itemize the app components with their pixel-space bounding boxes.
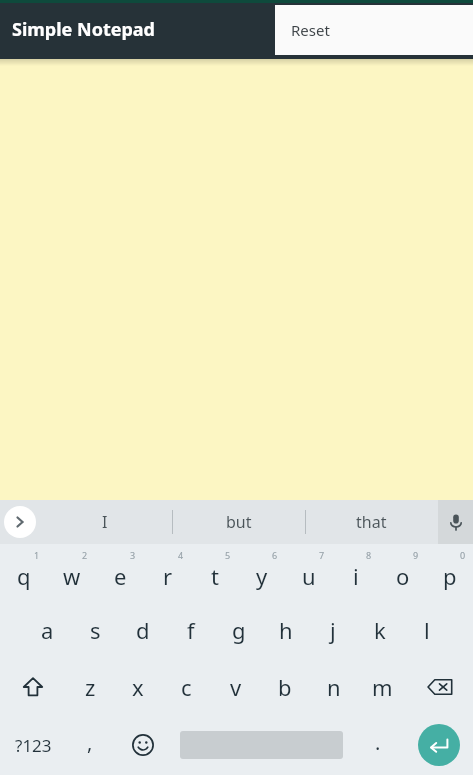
staticText: 4 bbox=[178, 549, 184, 561]
staticText: Simple Notepad bbox=[12, 17, 155, 42]
button[interactable]: t bbox=[191, 544, 238, 601]
staticText: s bbox=[90, 615, 101, 645]
staticText: j bbox=[330, 615, 336, 645]
button[interactable]: z bbox=[66, 658, 114, 715]
staticText: that bbox=[356, 511, 387, 533]
staticText: c bbox=[181, 672, 192, 702]
button[interactable]: Voice input bbox=[438, 500, 473, 544]
button[interactable]: Backspace bbox=[407, 658, 473, 715]
staticText: q bbox=[17, 561, 31, 591]
button[interactable]: c bbox=[162, 658, 211, 715]
button[interactable]: I bbox=[38, 500, 172, 544]
button[interactable]: x bbox=[114, 658, 162, 715]
staticText: x bbox=[132, 672, 144, 702]
staticText: o bbox=[396, 561, 410, 591]
button[interactable]: j bbox=[309, 601, 356, 658]
staticText: 2 bbox=[82, 549, 88, 561]
staticText: i bbox=[353, 561, 359, 591]
button[interactable]: d bbox=[119, 601, 167, 658]
button[interactable]: b bbox=[260, 658, 309, 715]
button[interactable]: v bbox=[211, 658, 260, 715]
button[interactable]: s bbox=[71, 601, 119, 658]
staticText: 3 bbox=[130, 549, 136, 561]
staticText: k bbox=[374, 615, 386, 645]
staticText: w bbox=[63, 561, 81, 591]
button[interactable]: ?123 bbox=[0, 715, 66, 775]
button[interactable]: Expand suggestions bbox=[4, 506, 36, 538]
staticText: f bbox=[187, 615, 195, 645]
staticText: l bbox=[424, 615, 430, 645]
button[interactable]: g bbox=[215, 601, 262, 658]
staticText: d bbox=[136, 615, 150, 645]
button[interactable]: k bbox=[356, 601, 403, 658]
staticText: e bbox=[114, 561, 127, 591]
button[interactable]: q bbox=[0, 544, 48, 601]
button[interactable]: w bbox=[48, 544, 96, 601]
button[interactable]: n bbox=[309, 658, 358, 715]
button[interactable]: Enter bbox=[418, 724, 460, 766]
staticText: h bbox=[279, 615, 293, 645]
staticText: 0 bbox=[460, 549, 466, 561]
staticText: n bbox=[327, 672, 341, 702]
button[interactable]: a bbox=[23, 601, 71, 658]
button[interactable]: y bbox=[238, 544, 285, 601]
staticText: t bbox=[211, 561, 219, 591]
button[interactable]: that bbox=[305, 500, 438, 544]
staticText: but bbox=[226, 511, 252, 533]
staticText: 6 bbox=[272, 549, 278, 561]
staticText: 5 bbox=[225, 549, 231, 561]
staticText: b bbox=[278, 672, 292, 702]
staticText: a bbox=[41, 615, 54, 645]
staticText: ?123 bbox=[15, 734, 52, 757]
button[interactable]: f bbox=[167, 601, 215, 658]
button[interactable]: . bbox=[351, 715, 405, 775]
staticText: Reset bbox=[291, 20, 330, 40]
button[interactable]: o bbox=[379, 544, 426, 601]
staticText: m bbox=[372, 672, 393, 702]
staticText: y bbox=[256, 561, 268, 591]
button[interactable]: l bbox=[403, 601, 450, 658]
staticText: z bbox=[85, 672, 96, 702]
staticText: g bbox=[232, 615, 246, 645]
button[interactable]: i bbox=[332, 544, 379, 601]
staticText: 7 bbox=[319, 549, 325, 561]
button[interactable]: p bbox=[426, 544, 473, 601]
button[interactable]: e bbox=[96, 544, 144, 601]
button[interactable]: , bbox=[66, 715, 114, 775]
staticText: p bbox=[443, 561, 457, 591]
staticText: , bbox=[87, 729, 93, 756]
staticText: r bbox=[163, 561, 173, 591]
staticText: 9 bbox=[413, 549, 419, 561]
button[interactable]: h bbox=[262, 601, 309, 658]
staticText: u bbox=[302, 561, 316, 591]
staticText: . bbox=[375, 729, 381, 756]
button[interactable]: u bbox=[285, 544, 332, 601]
staticText: 1 bbox=[34, 549, 40, 561]
staticText: I bbox=[102, 511, 108, 533]
button[interactable]: m bbox=[358, 658, 407, 715]
button[interactable]: Emoji bbox=[114, 715, 172, 775]
button[interactable]: Shift bbox=[0, 658, 66, 715]
staticText: v bbox=[230, 672, 242, 702]
staticText: 8 bbox=[366, 549, 372, 561]
button[interactable]: r bbox=[144, 544, 191, 601]
button[interactable]: Reset bbox=[275, 5, 473, 55]
button[interactable]: but bbox=[172, 500, 305, 544]
